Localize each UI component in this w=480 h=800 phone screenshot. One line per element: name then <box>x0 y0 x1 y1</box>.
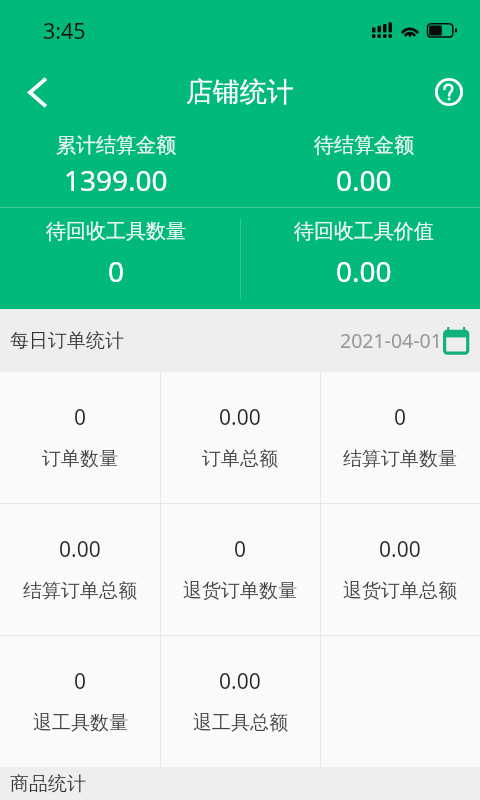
staticText: 3:45 <box>43 16 86 45</box>
staticText: 累计结算金额 <box>56 133 176 158</box>
staticText: 0.00 <box>379 535 421 564</box>
staticText: 退货订单数量 <box>183 579 297 603</box>
button[interactable]: 0 <box>0 372 160 503</box>
staticText: 待回收工具数量 <box>46 219 186 244</box>
staticText: 商品统计 <box>10 772 86 796</box>
staticText: 退工具总额 <box>193 711 288 735</box>
button[interactable]: Back <box>0 55 62 120</box>
staticText: 2021-04-01 <box>340 327 442 354</box>
button[interactable]: 待结算金额 <box>248 120 480 207</box>
button[interactable]: 0.00 <box>160 372 320 503</box>
staticText: 退工具数量 <box>33 711 128 735</box>
button[interactable]: Help <box>418 55 480 120</box>
staticText: 待结算金额 <box>314 133 414 158</box>
staticText: 订单总额 <box>202 447 278 471</box>
button[interactable]: 商品统计 <box>0 767 480 800</box>
staticText: 0.00 <box>219 403 261 432</box>
staticText: 店铺统计 <box>186 75 294 109</box>
staticText: 结算订单总额 <box>23 579 137 603</box>
staticText: 0.00 <box>219 667 261 696</box>
button[interactable]: 累计结算金额 <box>0 120 232 207</box>
staticText: 0 <box>234 535 247 564</box>
staticText: 0.00 <box>59 535 101 564</box>
staticText: 0.00 <box>336 161 392 199</box>
button[interactable]: 每日订单统计 <box>0 309 200 372</box>
button[interactable]: 0.00 <box>0 504 160 635</box>
button[interactable]: 待回收工具价值 <box>248 208 480 309</box>
staticText: 待回收工具价值 <box>294 219 434 244</box>
staticText: 0 <box>74 403 87 432</box>
button[interactable]: 2021-04-01 <box>340 309 470 372</box>
staticText: 0 <box>394 403 407 432</box>
staticText: 退货订单总额 <box>343 579 457 603</box>
button[interactable]: 待回收工具数量 <box>0 208 232 309</box>
staticText: 1399.00 <box>64 161 168 199</box>
button[interactable]: 0 <box>0 636 160 767</box>
staticText: 结算订单数量 <box>343 447 457 471</box>
button[interactable]: 0 <box>160 504 320 635</box>
button[interactable]: 0.00 <box>320 504 480 635</box>
staticText: 0 <box>74 667 87 696</box>
staticText: 0.00 <box>336 252 392 290</box>
button[interactable]: 0 <box>320 372 480 503</box>
staticText: 订单数量 <box>42 447 118 471</box>
staticText: 0 <box>108 252 125 290</box>
staticText: 每日订单统计 <box>10 329 124 353</box>
button[interactable]: 0.00 <box>160 636 320 767</box>
